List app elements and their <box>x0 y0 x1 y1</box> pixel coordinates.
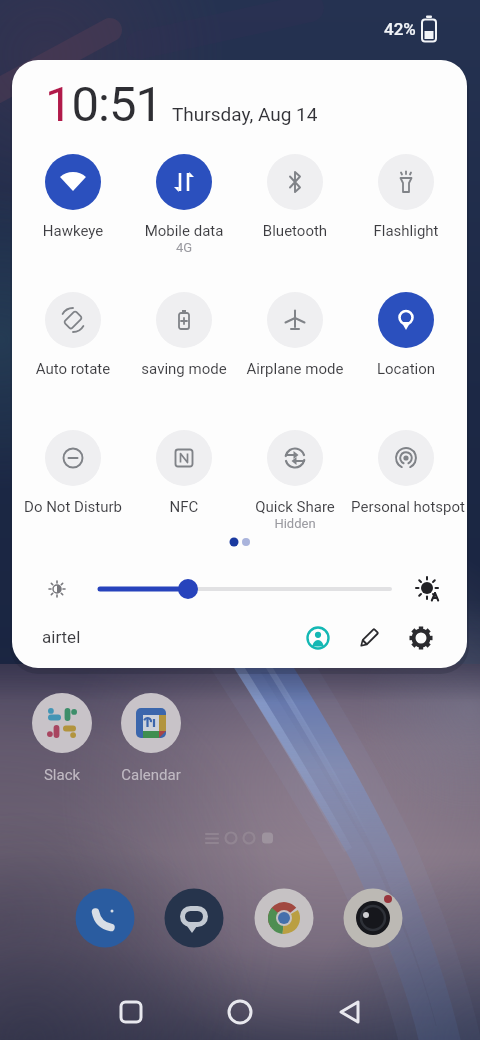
button[interactable]: Hawkeye <box>18 154 128 240</box>
button[interactable] <box>121 693 181 753</box>
button[interactable] <box>88 569 408 609</box>
staticText: Flashlight <box>351 222 461 240</box>
button[interactable]: Quick Share <box>240 430 350 531</box>
staticText: saving mode <box>129 360 239 378</box>
button[interactable] <box>347 616 391 660</box>
button[interactable]: saving mode <box>129 292 239 378</box>
staticText: Do Not Disturb <box>18 498 128 516</box>
button[interactable] <box>164 888 224 948</box>
staticText: Personal hotspot <box>351 498 461 516</box>
button[interactable] <box>254 888 314 948</box>
staticText: Auto rotate <box>18 360 128 378</box>
staticText: Thursday, Aug 14 <box>172 103 318 125</box>
staticText: NFC <box>129 498 239 516</box>
staticText: Mobile data <box>129 222 239 240</box>
button[interactable] <box>326 987 376 1037</box>
button[interactable] <box>296 616 340 660</box>
staticText: Slack <box>22 766 102 784</box>
staticText: Hawkeye <box>18 222 128 240</box>
staticText: Hidden <box>240 516 350 531</box>
button[interactable]: Flashlight <box>351 154 461 240</box>
staticText: Location <box>351 360 461 378</box>
staticText: airtel <box>42 627 81 647</box>
staticText: 42% <box>384 19 416 39</box>
staticText: Airplane mode <box>240 360 350 378</box>
button[interactable]: Bluetooth <box>240 154 350 240</box>
button[interactable] <box>106 987 156 1037</box>
staticText: Bluetooth <box>240 222 350 240</box>
button[interactable]: NFC <box>129 430 239 516</box>
button[interactable]: Location <box>351 292 461 378</box>
button[interactable]: Do Not Disturb <box>18 430 128 516</box>
staticText: Quick Share <box>240 498 350 516</box>
staticText: Calendar <box>111 766 191 784</box>
button[interactable]: Airplane mode <box>240 292 350 378</box>
button[interactable]: Mobile data <box>129 154 239 255</box>
button[interactable] <box>32 693 92 753</box>
button[interactable] <box>215 987 265 1037</box>
button[interactable]: Auto rotate <box>18 292 128 378</box>
staticText: 4G <box>129 240 239 255</box>
button[interactable] <box>343 888 403 948</box>
button[interactable] <box>75 888 135 948</box>
button[interactable] <box>399 616 443 660</box>
staticText: 10:51 <box>45 76 163 133</box>
button[interactable]: Personal hotspot <box>351 430 461 516</box>
